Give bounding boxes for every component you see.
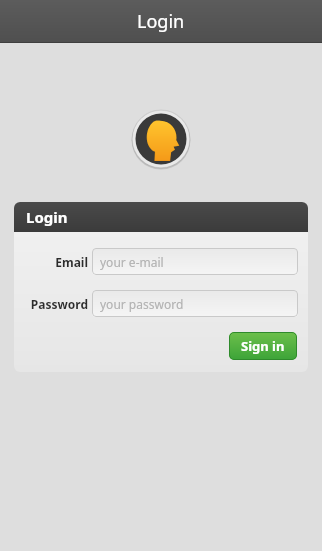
- staticText: Login: [137, 9, 185, 34]
- staticText: Email: [55, 254, 88, 270]
- button[interactable]: your password: [92, 290, 298, 317]
- other: User avatar: [131, 109, 191, 169]
- staticText: Password: [30, 296, 88, 312]
- staticText: your password: [100, 296, 184, 312]
- button[interactable]: your e-mail: [92, 248, 298, 275]
- button[interactable]: Sign in: [229, 332, 297, 360]
- staticText: Login: [26, 207, 68, 227]
- staticText: Sign in: [241, 337, 285, 355]
- staticText: your e-mail: [100, 254, 164, 270]
